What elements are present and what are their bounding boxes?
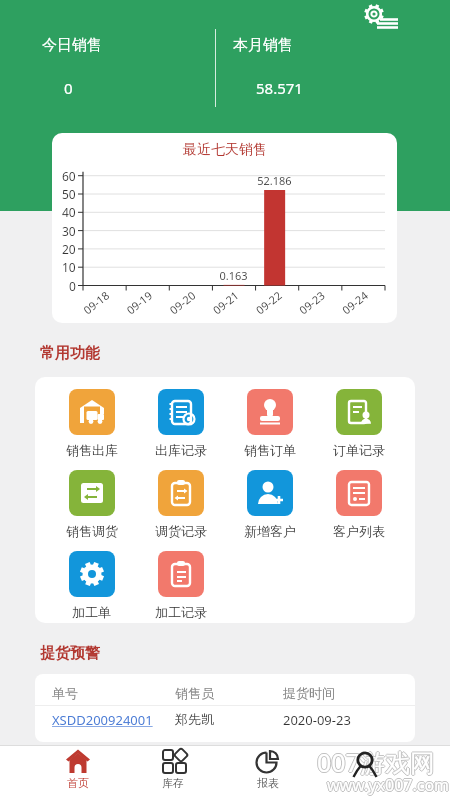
staticText: 0 [64,78,73,98]
staticText: 报表 [257,776,279,790]
staticText: www.yx007.com [326,774,449,796]
staticText: 常用功能 [40,344,100,363]
staticText: 库存 [162,776,184,790]
staticText: 007游戏网 [318,745,436,779]
staticText: 58.571 [256,78,303,98]
button[interactable]: 客户列表 [314,470,403,546]
staticText: www.yx007.com [327,774,450,796]
button[interactable]: 首页 [38,748,118,798]
button[interactable]: 新增客户 [225,470,314,546]
staticText: 销售订单 [244,442,296,458]
button[interactable]: 今日销售 [0,28,215,108]
staticText: 加工记录 [155,604,207,620]
button[interactable]: 出库记录 [136,389,225,465]
button[interactable]: 销售订单 [225,389,314,465]
staticText: www.yx007.com [328,774,450,796]
button[interactable]: 订单记录 [314,389,403,465]
button[interactable]: 销售出库 [47,389,136,465]
button[interactable]: 加工单 [47,551,136,627]
staticText: www.yx007.com [327,773,450,795]
staticText: XSDD200924001 [52,711,153,729]
staticText: 最近七天销售 [183,141,267,159]
staticText: 订单记录 [333,442,385,458]
staticText: 调货记录 [155,523,207,539]
staticText: 007游戏网 [316,745,434,779]
staticText: www.yx007.com [327,775,450,797]
button[interactable]: 报表 [228,748,308,798]
staticText: 销售调货 [66,523,118,539]
staticText: 提货时间 [283,685,335,701]
staticText: 今日销售 [42,36,102,55]
button[interactable]: 库存 [133,748,213,798]
button[interactable]: 销售调货 [47,470,136,546]
button[interactable]: 调货记录 [136,470,225,546]
staticText: 出库记录 [155,442,207,458]
staticText: 本月销售 [233,36,293,55]
button[interactable]: XSDD200924001 [43,707,193,735]
staticText: 郑先凯 [175,711,214,727]
staticText: 加工单 [72,604,111,620]
staticText: 提货预警 [40,644,100,663]
staticText: 销售出库 [66,442,118,458]
staticText: 销售员 [175,685,214,701]
staticText: 007游戏网 [317,746,435,780]
staticText: 客户列表 [333,523,385,539]
button[interactable]: 本月销售 [216,28,450,108]
staticText: 007游戏网 [317,745,435,779]
staticText: 首页 [67,776,89,790]
staticText: 新增客户 [244,523,296,539]
button[interactable] [360,2,400,30]
staticText: 007游戏网 [317,744,435,778]
staticText: 2020-09-23 [283,711,351,729]
staticText: 单号 [52,685,78,701]
button[interactable]: 加工记录 [136,551,225,627]
